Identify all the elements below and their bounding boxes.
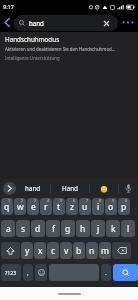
button[interactable] <box>119 179 138 198</box>
staticText: n <box>89 245 95 257</box>
staticText: x <box>38 245 43 257</box>
staticText: 4 <box>47 198 50 203</box>
staticText: , <box>27 268 29 278</box>
staticText: hand <box>25 184 41 193</box>
staticText: i <box>97 201 100 213</box>
button[interactable]: i <box>92 198 104 215</box>
button[interactable]: . <box>101 264 111 281</box>
staticText: 8 <box>99 198 102 203</box>
staticText: s <box>21 223 26 235</box>
button[interactable]: m <box>99 242 111 259</box>
staticText: Aktivieren und deaktivieren Sie den Hand… <box>5 46 116 52</box>
button[interactable] <box>103 20 110 27</box>
button[interactable]: v <box>60 242 72 259</box>
button[interactable]: k <box>106 220 120 237</box>
button[interactable]: a <box>1 220 15 237</box>
button[interactable]: , <box>23 264 33 281</box>
button[interactable]: z <box>66 198 78 215</box>
button[interactable] <box>122 21 134 24</box>
staticText: z <box>70 201 74 213</box>
staticText: t <box>57 201 61 213</box>
staticText: 9 <box>112 198 115 203</box>
button[interactable]: t <box>53 198 65 215</box>
button[interactable]: o <box>105 198 117 215</box>
button[interactable] <box>35 264 47 281</box>
staticText: e <box>31 201 36 213</box>
staticText: hand <box>29 19 44 27</box>
button[interactable]: x <box>34 242 46 259</box>
staticText: 1 <box>8 198 11 203</box>
staticText: Handschuhmodus <box>5 35 60 44</box>
staticText: 0 <box>125 198 128 203</box>
staticText: r <box>44 201 48 213</box>
staticText: j <box>97 223 100 235</box>
staticText: l <box>127 223 130 235</box>
staticText: y <box>25 245 30 257</box>
staticText: b <box>76 245 82 257</box>
button[interactable]: p <box>118 198 130 215</box>
button[interactable] <box>113 264 138 281</box>
button[interactable] <box>1 242 20 259</box>
button[interactable] <box>4 18 11 27</box>
button[interactable]: u <box>79 198 91 215</box>
staticText: q <box>4 201 10 213</box>
staticText: w <box>17 201 24 213</box>
staticText: 3 <box>34 198 37 203</box>
staticText: Hand <box>62 184 78 193</box>
staticText: u <box>82 201 88 213</box>
button[interactable]: s <box>16 220 30 237</box>
staticText: 9:17 <box>3 3 14 10</box>
button[interactable]: c <box>47 242 59 259</box>
staticText: v <box>64 245 69 257</box>
button[interactable]: f <box>46 220 60 237</box>
button[interactable]: Hand <box>51 179 89 198</box>
button[interactable]: g <box>61 220 75 237</box>
button[interactable]: hand <box>16 179 50 198</box>
staticText: m <box>101 245 109 257</box>
staticText: a <box>6 223 11 235</box>
button[interactable]: j <box>91 220 105 237</box>
button[interactable]: q <box>1 198 13 215</box>
button[interactable]: hand <box>14 15 118 31</box>
staticText: Intelligente Unterstützung <box>5 55 60 61</box>
staticText: f <box>52 223 55 235</box>
staticText: . <box>105 268 107 278</box>
button[interactable]: b <box>73 242 85 259</box>
staticText: h <box>80 223 86 235</box>
staticText: 7 <box>86 198 89 203</box>
staticText: g <box>65 223 71 235</box>
button[interactable]: Handschuhmodus <box>0 32 138 179</box>
button[interactable]: d <box>31 220 45 237</box>
button[interactable] <box>90 179 118 198</box>
staticText: ?123 <box>5 269 17 276</box>
button[interactable]: e <box>27 198 39 215</box>
button[interactable]: ?123 <box>1 264 21 281</box>
staticText: p <box>121 201 127 213</box>
staticText: d <box>35 223 41 235</box>
button[interactable] <box>112 242 131 259</box>
staticText: c <box>51 245 56 257</box>
button[interactable]: r <box>40 198 52 215</box>
button[interactable]: l <box>121 220 135 237</box>
button[interactable]: n <box>86 242 98 259</box>
staticText: 2 <box>21 198 24 203</box>
button[interactable]: h <box>76 220 90 237</box>
button[interactable]: y <box>21 242 33 259</box>
staticText: 6 <box>73 198 76 203</box>
button[interactable] <box>3 182 16 195</box>
staticText: k <box>111 223 116 235</box>
staticText: 5 <box>60 198 63 203</box>
button[interactable]: w <box>14 198 26 215</box>
button[interactable] <box>49 264 99 281</box>
staticText: o <box>108 201 114 213</box>
